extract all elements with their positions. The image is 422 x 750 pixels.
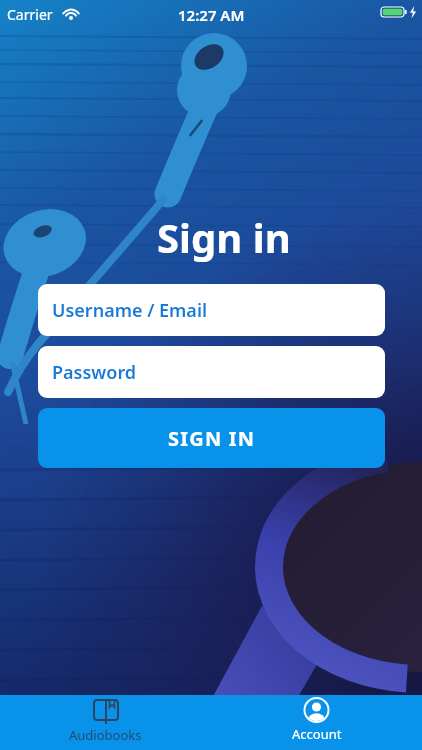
staticText: SIGN IN — [168, 425, 256, 452]
button[interactable]: Audiobooks — [0, 695, 211, 750]
staticText: Sign in — [157, 210, 291, 264]
button[interactable]: Password — [38, 346, 385, 398]
staticText: Username / Email — [52, 298, 208, 323]
staticText: Audiobooks — [69, 726, 142, 744]
staticText: 12:27 AM — [178, 5, 245, 25]
staticText: Account — [292, 725, 342, 743]
button[interactable]: SIGN IN — [38, 408, 385, 468]
staticText: Carrier — [7, 5, 53, 24]
button[interactable]: Account — [211, 695, 422, 750]
button[interactable]: Username / Email — [38, 284, 385, 336]
staticText: Password — [52, 360, 137, 385]
